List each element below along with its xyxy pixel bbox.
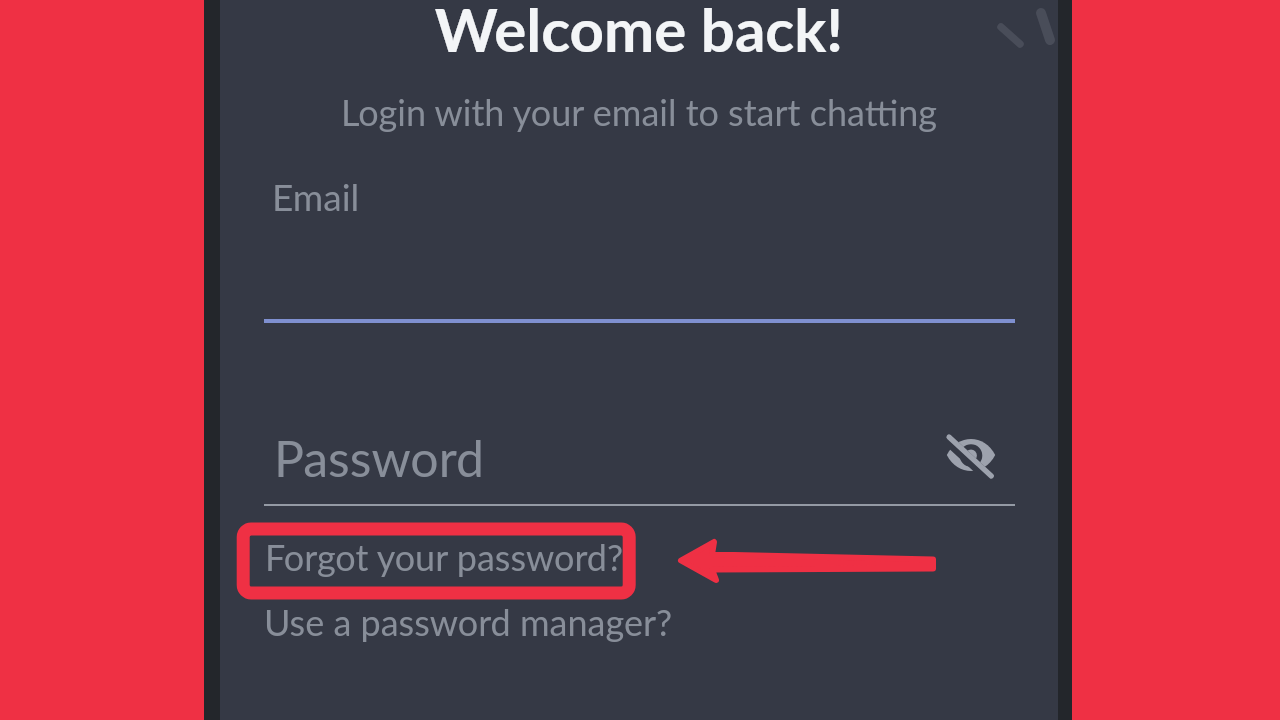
button[interactable]: Show password	[945, 429, 1003, 481]
staticText: Password	[274, 428, 484, 488]
staticText: Welcome back!	[220, 0, 1058, 65]
button[interactable]: Use a password manager?	[252, 594, 692, 652]
button[interactable]: Forgot your password?	[253, 529, 657, 587]
staticText: Email	[272, 174, 360, 218]
staticText: Forgot your password?	[265, 535, 624, 578]
staticText: Use a password manager?	[264, 600, 673, 643]
staticText: Login with your email to start chatting	[220, 90, 1058, 133]
button[interactable]: Password	[264, 416, 1015, 506]
button[interactable]: Email	[264, 160, 1015, 323]
